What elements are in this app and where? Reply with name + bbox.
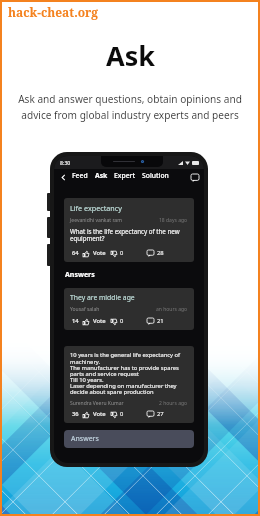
staticText: Surendra Veeru Kumar: [70, 400, 124, 407]
staticText: 8:30: [60, 159, 71, 166]
staticText: Feed: [72, 171, 88, 180]
button[interactable]: Comments: [146, 317, 154, 325]
staticText: Yousaf salah: [70, 306, 100, 313]
staticText: 10 years is the general life expectancy …: [70, 351, 181, 396]
staticText: 0: [120, 410, 124, 418]
staticText: 64: [72, 249, 79, 257]
staticText: 0: [120, 317, 124, 325]
button[interactable]: Upvote: [82, 318, 89, 325]
button[interactable]: Expert: [112, 171, 138, 183]
button[interactable]: Feed: [70, 171, 90, 183]
button[interactable]: Comments: [146, 249, 154, 257]
staticText: Ask: [95, 171, 108, 180]
staticText: 14: [72, 317, 79, 325]
button[interactable]: Comments: [146, 410, 154, 418]
staticText: 18 days ago: [159, 217, 188, 224]
button[interactable]: They are middle age: [64, 288, 194, 330]
button[interactable]: Solution: [140, 171, 171, 183]
staticText: They are middle age: [70, 293, 135, 302]
staticText: Vote: [93, 317, 106, 325]
staticText: Expert: [114, 171, 136, 180]
staticText: Ask: [106, 37, 155, 74]
button[interactable]: Ask: [93, 171, 110, 183]
staticText: 28: [157, 249, 164, 257]
staticText: Ask and answer questions, obtain opinion…: [18, 92, 242, 122]
button[interactable]: Downvote: [110, 250, 117, 257]
staticText: an hours ago: [156, 306, 188, 313]
staticText: hack-cheat.org: [8, 4, 99, 20]
staticText: 0: [120, 249, 124, 257]
staticText: What is the life expectancy of the new e…: [70, 227, 180, 243]
button[interactable]: Upvote: [82, 411, 89, 418]
button[interactable]: Back: [58, 172, 69, 183]
button[interactable]: Life expectancy: [64, 198, 194, 262]
button[interactable]: Answers: [64, 430, 194, 448]
staticText: Vote: [93, 249, 106, 257]
button[interactable]: Upvote: [82, 250, 89, 257]
staticText: Answers: [65, 270, 95, 280]
button[interactable]: Downvote: [110, 318, 117, 325]
staticText: 27: [157, 410, 164, 418]
staticText: Answers: [71, 434, 99, 444]
staticText: Life expectancy: [70, 203, 122, 213]
staticText: 21: [157, 317, 164, 325]
staticText: 2 hours ago: [159, 400, 188, 407]
button[interactable]: Downvote: [110, 411, 117, 418]
staticText: Solution: [142, 171, 169, 180]
staticText: Vote: [93, 410, 106, 418]
button[interactable]: Messages: [189, 172, 200, 183]
button[interactable]: 10 years is the general life expectancy …: [64, 346, 194, 423]
staticText: Jeevanidhi vankat ram: [70, 217, 122, 224]
staticText: 36: [72, 410, 79, 418]
